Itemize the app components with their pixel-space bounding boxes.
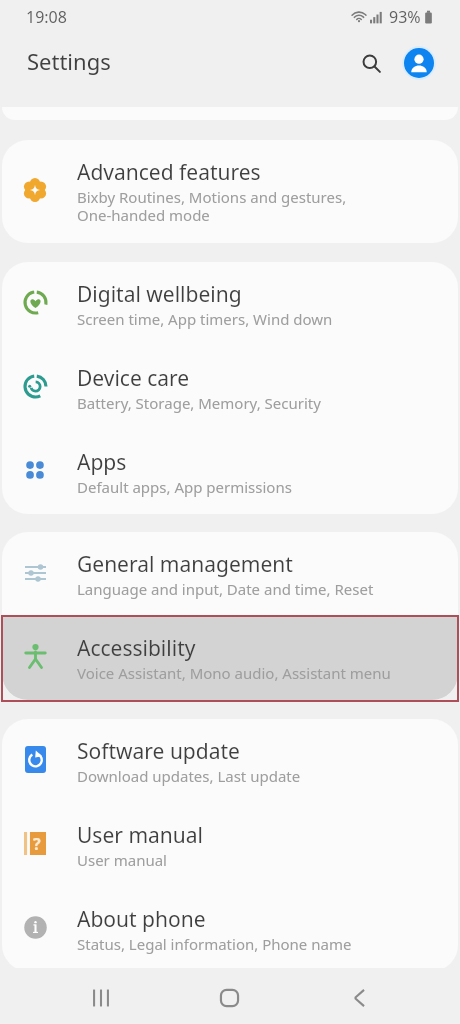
button[interactable]: Software update <box>2 719 458 803</box>
button[interactable]: Advanced features <box>2 140 458 243</box>
button[interactable]: Home <box>199 980 260 1015</box>
button[interactable]: Accessibility <box>2 616 458 700</box>
staticText: Voice Assistant, Mono audio, Assistant m… <box>77 663 391 683</box>
staticText: Download updates, Last update <box>77 766 301 786</box>
staticText: Status, Legal information, Phone name <box>77 934 352 954</box>
button[interactable]: Search <box>349 41 393 85</box>
staticText: Default apps, App permissions <box>77 477 292 497</box>
button[interactable]: Device care <box>2 346 458 430</box>
button[interactable]: About phone <box>2 887 458 971</box>
button[interactable]: Digital wellbeing <box>2 262 458 346</box>
staticText: Software update <box>77 737 240 766</box>
staticText: About phone <box>77 905 206 934</box>
staticText: Accessibility <box>77 634 196 663</box>
staticText: 93% <box>389 6 421 28</box>
button[interactable]: General management <box>2 532 458 616</box>
staticText: Settings <box>27 46 111 76</box>
staticText: ? <box>33 833 41 855</box>
staticText: Digital wellbeing <box>77 280 242 309</box>
staticText: Screen time, App timers, Wind down <box>77 309 333 329</box>
button[interactable]: Recent apps <box>70 980 131 1015</box>
staticText: User manual <box>77 850 167 870</box>
staticText: Apps <box>77 448 127 477</box>
staticText: General management <box>77 550 293 579</box>
staticText: Bixby Routines, Motions and gestures, On… <box>77 187 347 226</box>
staticText: Advanced features <box>77 158 261 187</box>
staticText: User manual <box>77 821 203 850</box>
staticText: Device care <box>77 364 190 393</box>
button[interactable]: Account <box>399 43 439 83</box>
button[interactable]: Back <box>328 980 389 1015</box>
button[interactable]: Apps <box>2 430 458 514</box>
staticText: Language and input, Date and time, Reset <box>77 579 374 599</box>
button[interactable]: ? <box>2 803 458 887</box>
staticText: 19:08 <box>26 6 67 28</box>
staticText: Battery, Storage, Memory, Security <box>77 393 321 413</box>
